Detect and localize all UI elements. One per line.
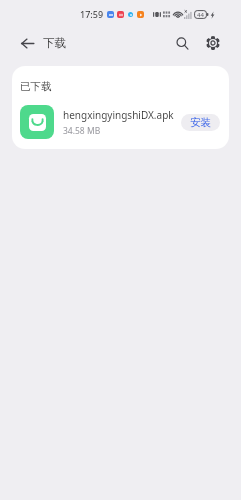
staticText: 下载 (43, 36, 66, 50)
staticText: 17:59 (80, 8, 104, 20)
button[interactable]: hengxingyingshiDX.apk (12, 103, 229, 141)
staticText: 安装 (190, 116, 211, 129)
button[interactable]: 安装 (181, 114, 220, 131)
button[interactable]: Back (11, 27, 43, 59)
staticText: 44 (197, 11, 204, 19)
staticText: 已下载 (20, 80, 52, 93)
button[interactable]: Search (168, 29, 196, 57)
staticText: 34.58 MB (63, 125, 101, 137)
button[interactable]: Settings (199, 29, 227, 57)
staticText: hengxingyingshiDX.apk (63, 108, 174, 122)
